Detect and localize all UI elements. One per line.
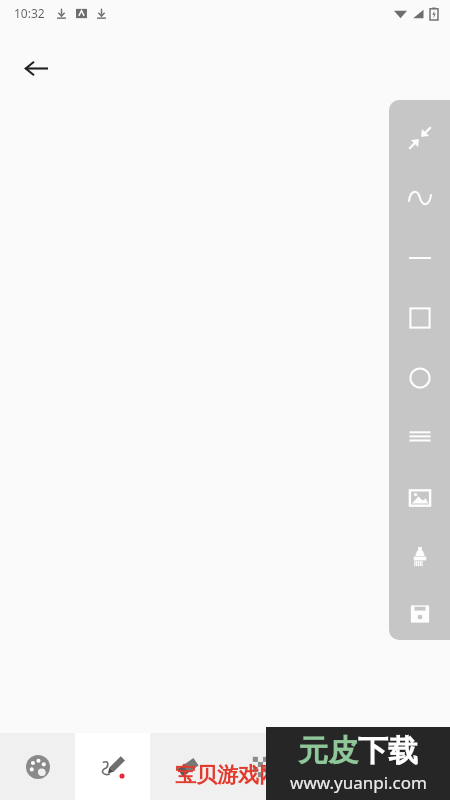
staticText: 下载 bbox=[358, 732, 418, 770]
button[interactable]: Line tool bbox=[389, 228, 450, 288]
button[interactable]: Layers bbox=[389, 408, 450, 468]
staticText: 元皮 bbox=[298, 732, 358, 770]
staticText: www.yuanpi.com bbox=[290, 771, 427, 794]
staticText: 10:32 bbox=[14, 5, 45, 21]
button[interactable]: More bbox=[300, 733, 375, 800]
button[interactable]: Color palette bbox=[0, 733, 75, 800]
button[interactable]: Options bbox=[375, 733, 450, 800]
button[interactable]: Rectangle tool bbox=[389, 288, 450, 348]
button[interactable]: Back bbox=[12, 44, 60, 92]
button[interactable]: Circle tool bbox=[389, 348, 450, 408]
button[interactable]: Pattern bbox=[225, 733, 300, 800]
staticText: 宝贝游戏网 bbox=[175, 762, 280, 788]
button[interactable]: Pen bbox=[75, 733, 150, 800]
button[interactable]: Eraser bbox=[150, 733, 225, 800]
button[interactable]: Collapse bbox=[389, 108, 450, 168]
button[interactable]: Curve tool bbox=[389, 168, 450, 228]
button[interactable]: Insert image bbox=[389, 468, 450, 528]
button[interactable]: Save bbox=[389, 588, 450, 640]
button[interactable]: Clear canvas bbox=[389, 528, 450, 588]
